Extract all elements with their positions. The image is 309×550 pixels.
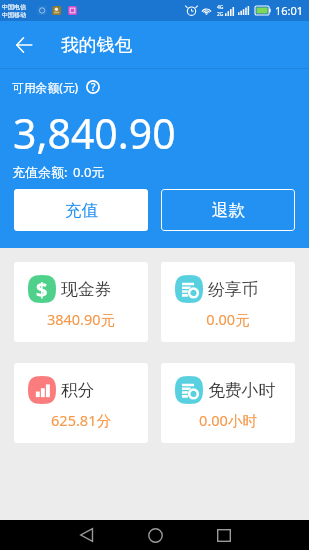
staticText: 625.81分 [14, 410, 148, 430]
button[interactable]: 积分 [14, 363, 148, 443]
button[interactable]: 纷享币 [161, 262, 295, 342]
button[interactable]: Help [86, 80, 100, 94]
staticText: 中国电信 [2, 3, 26, 11]
staticText: 3840.90元 [14, 309, 148, 329]
staticText: 可用余额(元) [12, 79, 79, 95]
staticText: $ [36, 276, 48, 303]
button[interactable]: $ [14, 262, 148, 342]
button[interactable]: Back [6, 27, 42, 63]
staticText: 16:01 [275, 3, 304, 18]
staticText: 积分 [61, 380, 95, 401]
staticText: 我的钱包 [61, 34, 133, 56]
button[interactable]: 充值 [14, 189, 148, 231]
staticText: 3,840.90 [13, 105, 176, 161]
button[interactable]: Back [66, 520, 106, 550]
button[interactable]: Home [135, 520, 175, 550]
staticText: 退款 [212, 200, 245, 221]
staticText: 4G [217, 4, 224, 11]
staticText: 2G [217, 11, 224, 18]
staticText: 中国移动 [2, 11, 26, 19]
staticText: 免费小时 [208, 380, 276, 401]
staticText: ? [91, 80, 96, 94]
button[interactable]: Recent apps [204, 520, 244, 550]
staticText: 0.00元 [161, 309, 295, 329]
staticText: 0.00小时 [161, 410, 295, 430]
button[interactable]: 退款 [161, 189, 295, 231]
staticText: 充值 [65, 200, 98, 221]
staticText: 纷享币 [208, 279, 259, 300]
staticText: 充值余额: 0.0元 [12, 163, 105, 181]
staticText: 现金券 [61, 279, 112, 300]
button[interactable]: 免费小时 [161, 363, 295, 443]
